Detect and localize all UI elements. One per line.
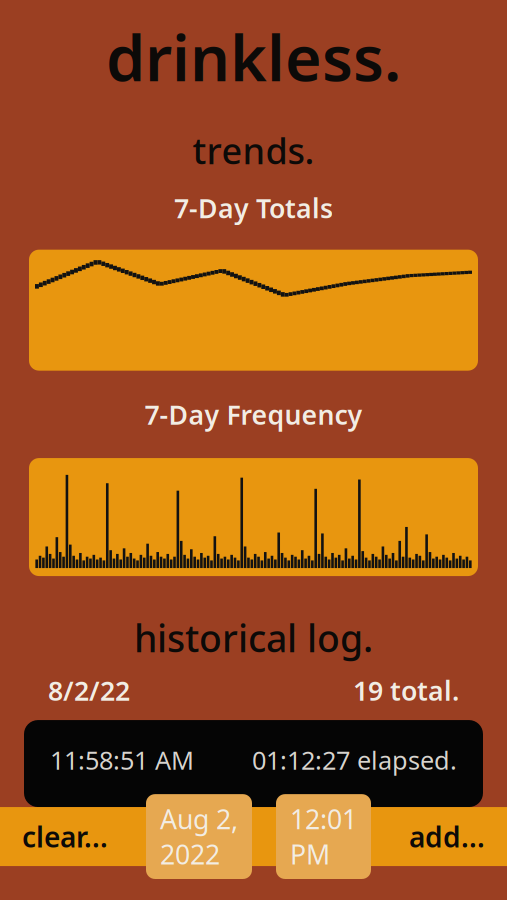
staticText: 19 total. — [353, 673, 459, 708]
staticText: 11:58:51 AM — [50, 743, 194, 777]
button[interactable]: 12:01 PM — [276, 794, 371, 879]
staticText: historical log. — [134, 613, 373, 663]
staticText: trends. — [192, 126, 314, 174]
staticText: clear... — [22, 818, 108, 855]
button[interactable]: clear... — [8, 808, 122, 865]
staticText: add... — [409, 818, 485, 855]
staticText: 7-Day Frequency — [144, 397, 362, 432]
staticText: Aug 2, 2022 — [160, 801, 238, 872]
staticText: 8/2/22 — [48, 673, 130, 708]
staticText: 12:01 PM — [290, 801, 357, 872]
staticText: 7-Day Totals — [174, 190, 333, 226]
staticText: drinkless. — [106, 15, 401, 98]
button[interactable]: add... — [395, 808, 499, 865]
button[interactable]: Aug 2, 2022 — [146, 794, 252, 879]
staticText: 01:12:27 elapsed. — [252, 743, 457, 777]
button[interactable]: 11:58:51 AM — [24, 720, 483, 807]
